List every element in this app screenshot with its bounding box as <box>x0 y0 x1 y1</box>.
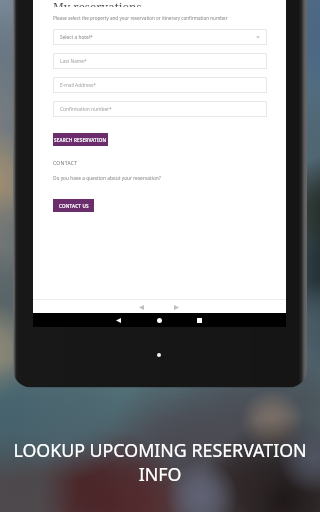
staticText: Select a hotel* <box>60 34 93 41</box>
button[interactable]: Next <box>174 305 179 310</box>
staticText: Do you have a question about your reserv… <box>53 175 161 182</box>
staticText: SEARCH RESERVATION <box>54 137 107 143</box>
button[interactable]: Previous <box>139 305 144 310</box>
button[interactable]: Select a hotel* <box>53 29 267 45</box>
button[interactable]: CONTACT US <box>53 199 94 212</box>
button[interactable]: E-mail Address* <box>53 77 267 93</box>
button[interactable]: Confirmation number* <box>53 101 267 117</box>
staticText: Last Name* <box>60 58 87 65</box>
staticText: Confirmation number* <box>60 106 112 113</box>
button[interactable]: SEARCH RESERVATION <box>53 133 108 146</box>
button[interactable]: Back <box>116 318 121 323</box>
staticText: CONTACT US <box>59 203 89 209</box>
staticText: LOOKUP UPCOMING RESERVATION INFO <box>0 438 320 486</box>
staticText: My reservations <box>53 0 142 7</box>
staticText: Please select the property and your rese… <box>53 15 228 21</box>
staticText: CONTACT <box>53 160 78 167</box>
staticText: E-mail Address* <box>60 82 96 89</box>
button[interactable]: Last Name* <box>53 53 267 69</box>
button[interactable]: Home <box>157 318 162 323</box>
